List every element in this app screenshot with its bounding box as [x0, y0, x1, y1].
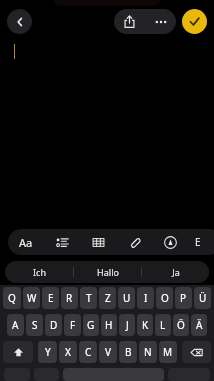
staticText: Ja [172, 266, 180, 278]
button[interactable]: G [83, 314, 99, 336]
button[interactable]: L [155, 314, 171, 336]
staticText: Aa [19, 235, 33, 250]
staticText: V [105, 345, 111, 359]
button[interactable]: Markup [152, 229, 188, 255]
staticText: U [123, 291, 131, 305]
button[interactable]: B [119, 341, 137, 363]
staticText: X [65, 345, 71, 359]
staticText: Ich [33, 266, 46, 278]
staticText: Z [105, 291, 111, 305]
button[interactable]: Backspace [182, 341, 211, 363]
button[interactable]: J [119, 314, 135, 336]
staticText: S [32, 318, 38, 332]
button[interactable]: Y [38, 341, 57, 363]
staticText: E [48, 291, 54, 305]
button[interactable]: Ö [173, 314, 189, 336]
button[interactable]: A [7, 314, 24, 336]
staticText: G [87, 318, 95, 332]
button[interactable]: Ja [142, 261, 209, 283]
staticText: Ö [177, 318, 185, 332]
staticText: Hallo [97, 266, 119, 278]
button[interactable]: W [23, 287, 40, 309]
button[interactable]: I [137, 287, 154, 309]
button[interactable]: S [26, 314, 43, 336]
button[interactable]: Attach [116, 229, 152, 255]
staticText: W [27, 291, 37, 305]
button[interactable]: K [137, 314, 153, 336]
staticText: H [105, 318, 113, 332]
button[interactable]: F [64, 314, 81, 336]
staticText: E [195, 235, 201, 249]
button[interactable]: E [42, 287, 59, 309]
button[interactable]: Back [7, 9, 32, 34]
staticText: L [160, 318, 166, 332]
staticText: I [144, 291, 148, 305]
button[interactable]: D [45, 314, 62, 336]
button[interactable]: P [175, 287, 192, 309]
button[interactable]: M [159, 341, 177, 363]
button[interactable]: Z [99, 287, 116, 309]
button[interactable]: H [101, 314, 117, 336]
button[interactable]: Hallo [74, 261, 141, 283]
button[interactable]: X [59, 341, 77, 363]
button[interactable]: Q [3, 287, 21, 309]
staticText: K [142, 318, 149, 332]
button[interactable]: V [99, 341, 117, 363]
staticText: F [70, 318, 76, 332]
button[interactable]: U [118, 287, 135, 309]
button[interactable]: Done [182, 9, 207, 34]
staticText: A [12, 318, 19, 332]
staticText: C [85, 345, 92, 359]
button[interactable]: N [139, 341, 157, 363]
staticText: Y [45, 345, 51, 359]
button[interactable]: Share [114, 9, 145, 34]
button[interactable]: T [80, 287, 97, 309]
staticText: M [163, 345, 173, 359]
staticText: D [50, 318, 58, 332]
staticText: N [144, 345, 152, 359]
staticText: O [161, 291, 169, 305]
button[interactable]: Shift [3, 341, 33, 363]
staticText: R [66, 291, 73, 305]
button[interactable]: O [156, 287, 173, 309]
staticText: T [86, 291, 92, 305]
button[interactable]: R [61, 287, 78, 309]
button[interactable]: Ich [5, 261, 73, 283]
staticText: Q [8, 291, 16, 305]
staticText: P [180, 291, 187, 305]
button[interactable]: Table [80, 229, 116, 255]
staticText: Ä [196, 318, 203, 332]
button[interactable]: C [79, 341, 97, 363]
button[interactable]: More options [145, 9, 176, 34]
button[interactable]: Ü [194, 287, 211, 309]
staticText: B [125, 345, 132, 359]
button[interactable]: Text format [8, 229, 44, 255]
staticText: Ü [199, 291, 207, 305]
button[interactable]: Ä [191, 314, 207, 336]
staticText: J [126, 318, 129, 332]
button[interactable]: Checklist [44, 229, 80, 255]
